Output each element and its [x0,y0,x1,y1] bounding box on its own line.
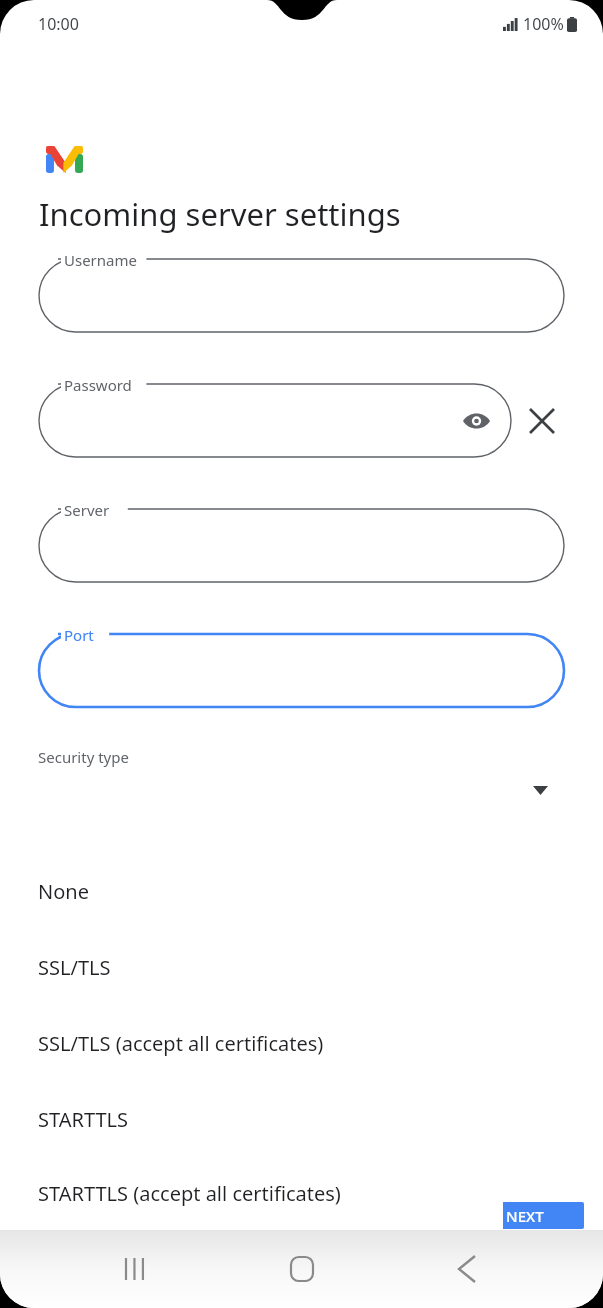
staticText: None [38,878,89,905]
button[interactable]: Recent apps [106,1239,166,1299]
button[interactable]: Show password [39,384,511,457]
staticText: NEXT [506,1206,544,1226]
staticText: STARTTLS (accept all certificates) [38,1180,341,1207]
button[interactable] [39,259,564,332]
button[interactable] [39,634,564,707]
staticText: Port [64,625,94,645]
staticText: STARTTLS [38,1106,129,1133]
staticText: Server [64,500,110,520]
staticText: Username [64,250,137,270]
button[interactable] [39,509,564,582]
staticText: 100% [523,13,564,35]
button[interactable]: SSL/TLS [25,929,503,1005]
button[interactable]: NEXT [466,1202,584,1229]
staticText: Incoming server settings [39,193,401,235]
staticText: SSL/TLS [38,954,111,981]
button[interactable]: Home [272,1239,332,1299]
button[interactable]: None [25,853,503,929]
staticText: Security type [38,747,129,767]
staticText: SSL/TLS (accept all certificates) [38,1030,324,1057]
button[interactable]: Clear password [521,400,563,442]
button[interactable]: Show password [459,404,493,438]
button[interactable]: STARTTLS (accept all certificates) [25,1157,503,1230]
staticText: Password [64,375,132,395]
button[interactable]: SSL/TLS (accept all certificates) [25,1005,503,1081]
button[interactable]: Open security type dropdown [527,777,553,803]
button[interactable]: Back [437,1239,497,1299]
staticText: 10:00 [38,13,79,35]
button[interactable]: STARTTLS [25,1081,503,1157]
